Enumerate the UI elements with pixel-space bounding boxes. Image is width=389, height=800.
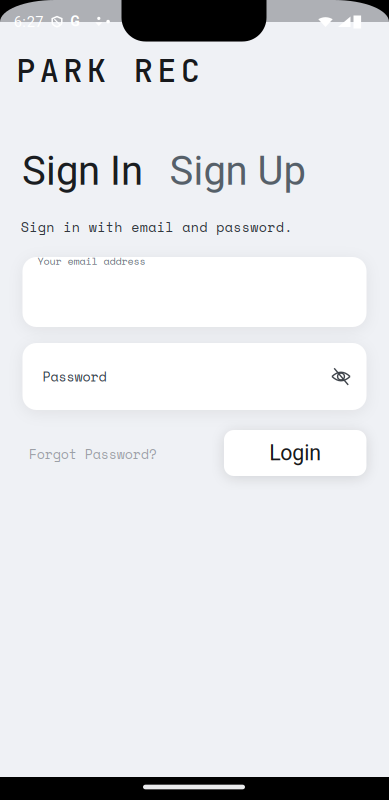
staticText: Login [269,440,321,465]
staticText: Forgot Password? [29,444,157,464]
staticText: Sign in with email and password. [21,217,292,237]
staticText: Your email address [37,253,145,268]
staticText: PARK REC [16,49,200,92]
staticText: Password [42,367,106,386]
button[interactable]: Sign In [22,148,143,194]
button[interactable]: Forgot Password? [29,444,157,464]
button[interactable]: Show password [327,362,355,390]
button[interactable]: Login [224,430,366,476]
button[interactable]: Your email address [22,257,366,327]
staticText: Sign In [22,148,143,194]
button[interactable]: Password [22,343,366,410]
staticText: 6:27 [14,13,43,31]
staticText: Sign Up [169,148,305,194]
staticText: G [70,13,80,30]
button[interactable]: Sign Up [169,148,305,194]
